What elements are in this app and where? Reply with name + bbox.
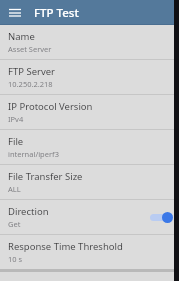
staticText: Direction	[8, 205, 49, 218]
staticText: Name	[8, 30, 35, 43]
staticText: Response Time Threshold	[8, 240, 123, 253]
button[interactable]: IP Protocol Version	[0, 95, 179, 129]
staticText: 10.250.2.218	[8, 79, 53, 89]
button[interactable]: Open navigation menu	[6, 4, 24, 22]
button[interactable]: File	[0, 130, 179, 164]
staticText: 10 s	[8, 254, 23, 264]
staticText: FTP Server	[8, 65, 56, 78]
button[interactable]: Name	[0, 25, 179, 59]
staticText: ALL	[8, 184, 21, 194]
button[interactable]: Direction	[0, 200, 179, 234]
staticText: File Transfer Size	[8, 170, 83, 183]
button[interactable]: File Transfer Size	[0, 165, 179, 199]
staticText: File	[8, 135, 24, 148]
button[interactable]: FTP Server	[0, 60, 179, 94]
button[interactable]: Direction toggle	[149, 208, 173, 226]
staticText: internal/iperf3	[8, 149, 59, 159]
staticText: IP Protocol Version	[8, 100, 93, 113]
staticText: FTP Test	[34, 5, 79, 21]
staticText: Get	[8, 219, 21, 229]
staticText: IPv4	[8, 114, 24, 124]
button[interactable]: Response Time Threshold	[0, 235, 179, 269]
staticText: Asset Server	[8, 44, 52, 54]
